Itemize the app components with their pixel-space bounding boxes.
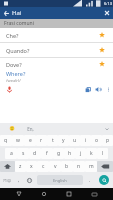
staticText: z	[19, 163, 22, 170]
button[interactable]: o	[91, 135, 102, 146]
button[interactable]: d	[29, 148, 41, 159]
button[interactable]: Favorite	[97, 30, 107, 40]
staticText: Dove?	[6, 61, 22, 68]
staticText: s	[22, 150, 25, 157]
button[interactable]: r	[36, 135, 47, 146]
button[interactable]: m	[85, 161, 97, 172]
button[interactable]: 🙂	[6, 124, 17, 133]
staticText: x	[30, 163, 33, 170]
staticText: t	[52, 137, 54, 144]
staticText: j	[80, 150, 82, 157]
staticText: b	[65, 163, 69, 170]
staticText: g	[57, 150, 61, 157]
button[interactable]: b	[61, 161, 73, 172]
button[interactable]: p	[102, 135, 113, 146]
staticText: h	[68, 150, 72, 157]
button[interactable]: l	[97, 148, 108, 159]
button[interactable]: Backspace	[97, 161, 113, 172]
staticText: y	[62, 137, 65, 144]
staticText: ?1☺	[3, 178, 12, 183]
button[interactable]: u	[69, 135, 80, 146]
button[interactable]: Comma	[14, 175, 24, 186]
button[interactable]: c	[37, 161, 49, 172]
button[interactable]: k	[86, 148, 97, 159]
staticText: v	[54, 163, 57, 170]
button[interactable]: z	[15, 161, 26, 172]
staticText: r	[40, 137, 43, 144]
button[interactable]: y	[58, 135, 69, 146]
button[interactable]: j	[75, 148, 86, 159]
button[interactable]: Search	[95, 173, 113, 187]
staticText: m	[89, 163, 94, 170]
staticText: Hai	[12, 9, 22, 17]
button[interactable]: Che?	[0, 28, 113, 42]
button[interactable]: ?1☺	[0, 175, 14, 186]
button[interactable]: Emoji	[24, 175, 35, 186]
button[interactable]: English	[37, 175, 83, 185]
button[interactable]: Back	[13, 188, 25, 200]
button[interactable]: t	[47, 135, 58, 146]
button[interactable]: h	[64, 148, 75, 159]
staticText: Quando?	[6, 47, 30, 54]
button[interactable]: En,	[25, 124, 36, 133]
staticText: c	[42, 163, 45, 170]
button[interactable]: i	[80, 135, 91, 146]
staticText: f	[46, 150, 48, 157]
button[interactable]: Recents	[63, 188, 75, 200]
staticText: p	[106, 137, 110, 144]
button[interactable]: w	[12, 135, 24, 146]
staticText: Frasi comuni	[4, 20, 34, 27]
staticText: a	[10, 150, 13, 157]
button[interactable]: Back	[0, 7, 12, 19]
button[interactable]: v	[49, 161, 61, 172]
button[interactable]: Speak	[93, 84, 104, 95]
button[interactable]: f	[41, 148, 53, 159]
button[interactable]: x	[26, 161, 37, 172]
button[interactable]: Dove?	[0, 58, 113, 70]
staticText: w	[16, 137, 20, 144]
button[interactable]: Hide keyboard	[88, 188, 100, 200]
staticText: d	[33, 150, 37, 157]
button[interactable]: Period	[85, 175, 95, 186]
button[interactable]: Favorite	[97, 45, 107, 55]
staticText: k	[90, 150, 93, 157]
button[interactable]: a	[5, 148, 17, 159]
staticText: o	[95, 137, 99, 144]
staticText: .	[89, 177, 91, 184]
staticText: e	[29, 137, 32, 144]
staticText: u	[73, 137, 77, 144]
staticText: i	[85, 137, 87, 144]
button[interactable]: Shift	[0, 161, 15, 172]
button[interactable]: e	[24, 135, 36, 146]
staticText: En,	[27, 126, 34, 132]
staticText: 🙂	[9, 126, 15, 131]
button[interactable]: Quando?	[0, 43, 113, 57]
staticText: l	[102, 150, 104, 157]
button[interactable]: q	[0, 135, 12, 146]
button[interactable]: Clear	[101, 7, 113, 19]
button[interactable]: Favorite	[97, 59, 107, 69]
button[interactable]: g	[53, 148, 64, 159]
staticText: q	[4, 137, 8, 144]
staticText: ,	[18, 177, 20, 184]
button[interactable]: s	[17, 148, 29, 159]
staticText: Che?	[6, 32, 19, 39]
staticText: 6:13	[104, 1, 112, 6]
staticText: /weə(r)/	[6, 78, 21, 83]
staticText: n	[77, 163, 81, 170]
button[interactable]: Home	[38, 188, 50, 200]
button[interactable]: Copy	[82, 84, 93, 95]
button[interactable]: n	[73, 161, 85, 172]
button[interactable]: Voice input	[4, 84, 15, 95]
staticText: Where?	[6, 70, 26, 77]
staticText: English	[53, 178, 67, 183]
button[interactable]: Expand suggestions	[102, 124, 111, 133]
button[interactable]: More options	[104, 85, 112, 93]
